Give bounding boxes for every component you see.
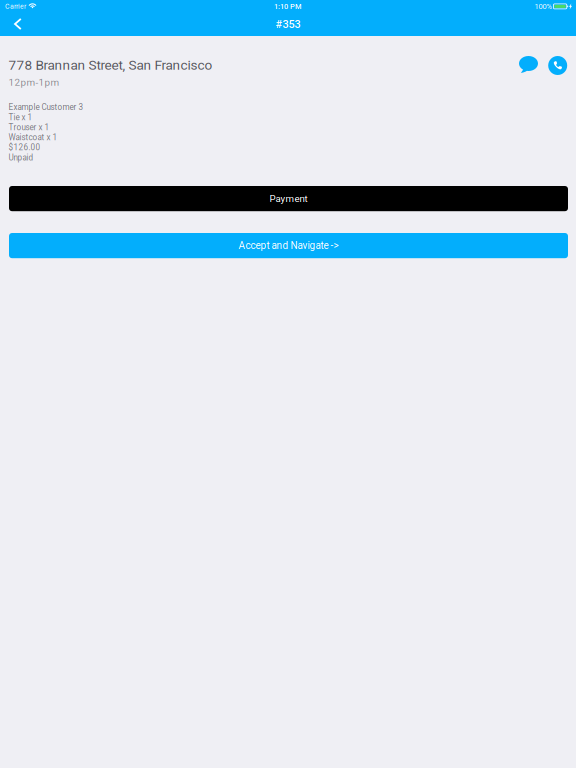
staticText: 1:10 PM <box>274 2 302 11</box>
staticText: Tie x 1 <box>9 113 33 122</box>
button[interactable]: Back <box>0 13 40 35</box>
staticText: 778 Brannan Street, San Francisco <box>9 57 213 73</box>
button[interactable]: Payment <box>9 186 568 211</box>
staticText: 100% <box>535 2 552 11</box>
staticText: Accept and Navigate -> <box>238 240 338 251</box>
staticText: #353 <box>275 18 300 31</box>
staticText: Trouser x 1 <box>9 123 50 132</box>
button[interactable]: Call <box>548 56 567 78</box>
staticText: Unpaid <box>9 153 34 162</box>
staticText: Example Customer 3 <box>9 102 84 112</box>
staticText: 12pm-1pm <box>9 77 60 88</box>
button[interactable]: Message <box>519 56 543 78</box>
staticText: Carrier <box>5 2 26 10</box>
staticText: $126.00 <box>9 143 41 152</box>
button[interactable]: Accept and Navigate -> <box>9 233 568 258</box>
staticText: Payment <box>269 193 307 204</box>
staticText: Waistcoat x 1 <box>9 133 58 142</box>
